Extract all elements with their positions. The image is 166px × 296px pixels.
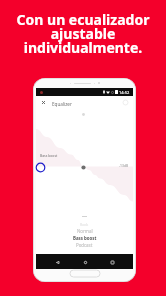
button[interactable]: Close bbox=[37, 96, 50, 109]
staticText: -13dB bbox=[119, 163, 129, 168]
button[interactable]: Recents bbox=[106, 256, 118, 268]
staticText: Bass boost bbox=[40, 153, 58, 158]
staticText: Normal bbox=[77, 228, 93, 234]
staticText: Rock bbox=[80, 222, 89, 227]
button[interactable]: Menu bbox=[120, 97, 131, 108]
staticText: Podcast bbox=[76, 242, 93, 248]
button[interactable]: Back bbox=[51, 256, 63, 268]
staticText: Bass boost bbox=[73, 235, 97, 241]
button[interactable]: Home bbox=[79, 256, 91, 268]
staticText: 14:52 bbox=[119, 90, 130, 95]
staticText: Equalizer bbox=[52, 101, 72, 107]
staticText: Con un ecualizador ajustable individualm… bbox=[0, 10, 166, 57]
